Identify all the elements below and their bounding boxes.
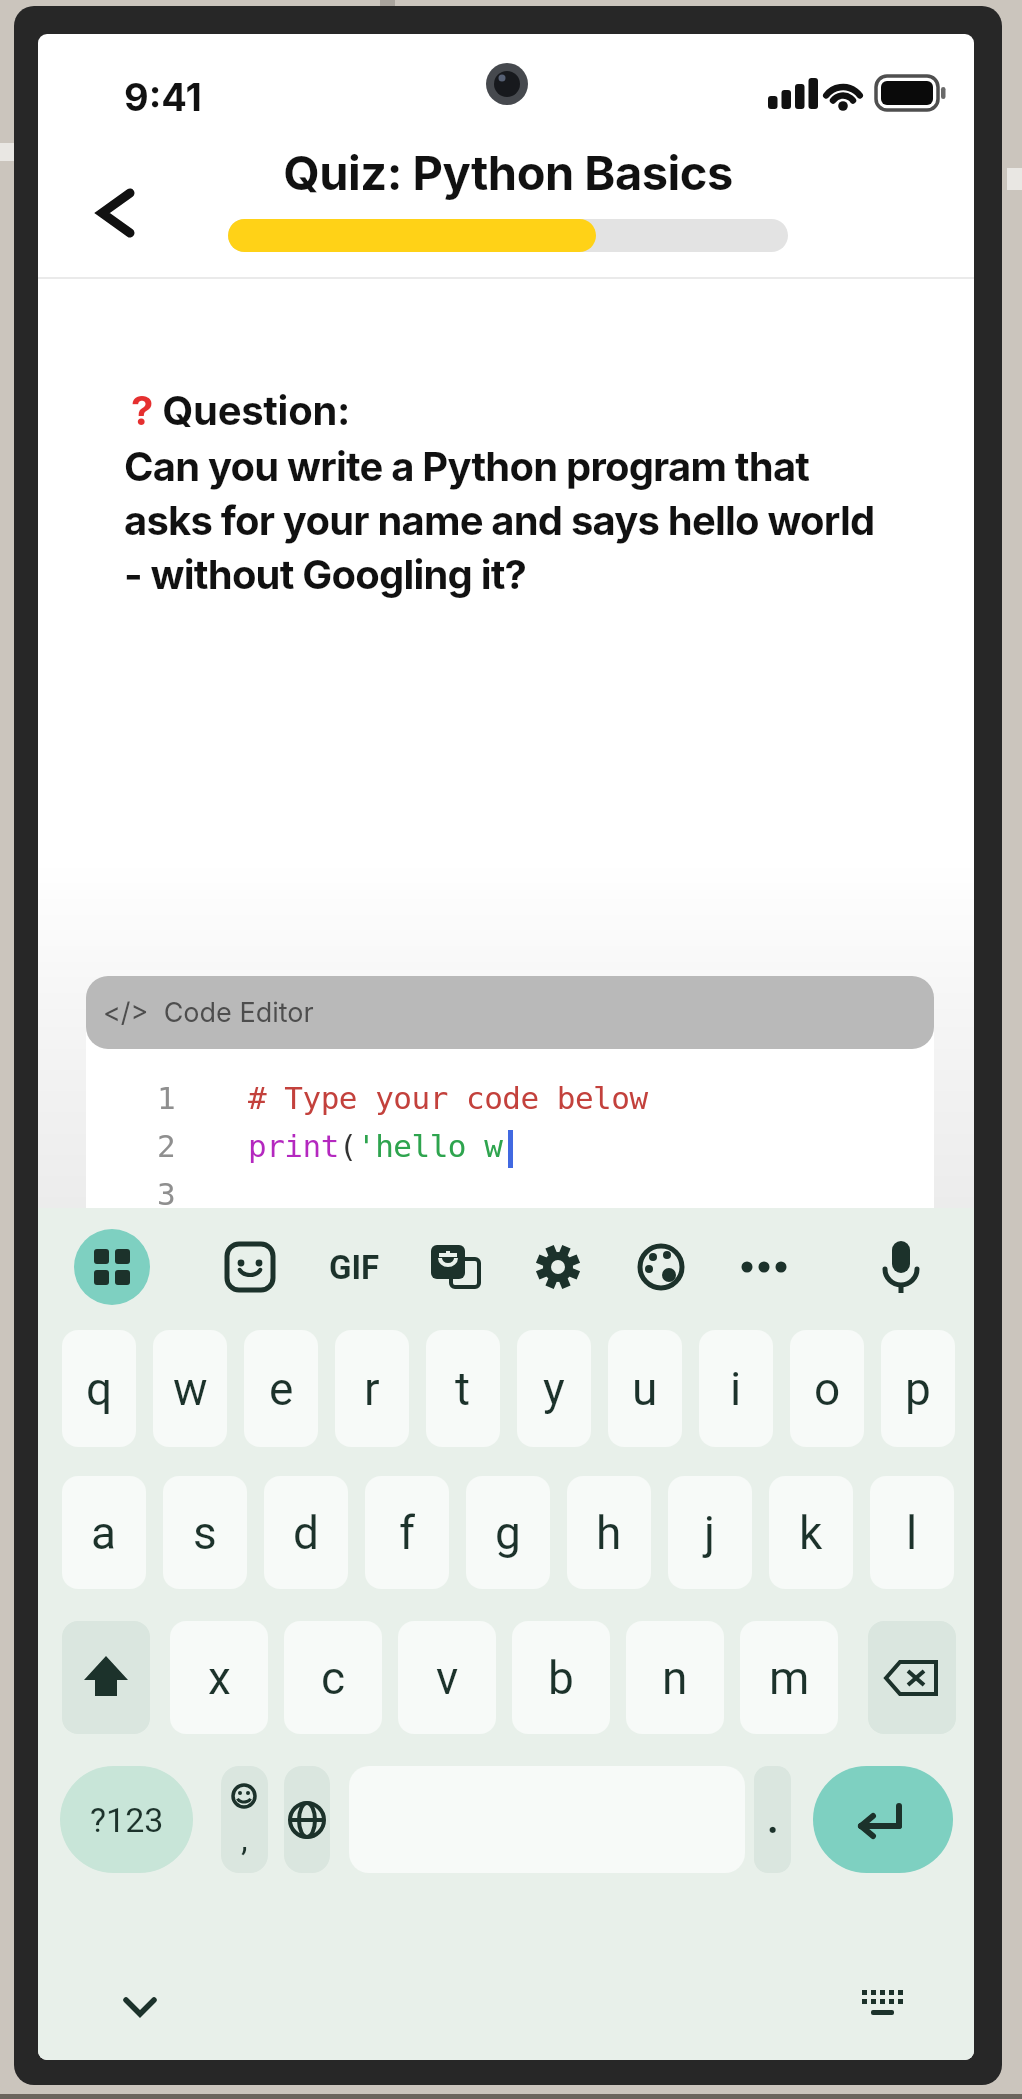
- button[interactable]: f: [365, 1476, 449, 1589]
- button[interactable]: q: [62, 1330, 136, 1447]
- staticText: t: [455, 1362, 471, 1416]
- button[interactable]: [728, 1241, 800, 1293]
- button[interactable]: p: [881, 1330, 955, 1447]
- staticText: 1: [157, 1080, 176, 1116]
- button[interactable]: m: [740, 1621, 838, 1734]
- button[interactable]: s: [163, 1476, 247, 1589]
- button[interactable]: d: [264, 1476, 348, 1589]
- button[interactable]: r: [335, 1330, 409, 1447]
- button[interactable]: [86, 976, 934, 1210]
- button[interactable]: [429, 1241, 481, 1293]
- button[interactable]: g: [466, 1476, 550, 1589]
- button[interactable]: b: [512, 1621, 610, 1734]
- staticText: b: [548, 1651, 574, 1705]
- staticText: n: [662, 1651, 688, 1705]
- button[interactable]: [74, 1229, 150, 1305]
- staticText: ,: [241, 1819, 248, 1859]
- staticText: l: [906, 1506, 918, 1560]
- button[interactable]: x: [170, 1621, 268, 1734]
- staticText: w: [173, 1362, 208, 1416]
- button[interactable]: [635, 1241, 687, 1293]
- button[interactable]: h: [567, 1476, 651, 1589]
- button[interactable]: n: [626, 1621, 724, 1734]
- button[interactable]: o: [790, 1330, 864, 1447]
- button[interactable]: j: [668, 1476, 752, 1589]
- staticText: j: [704, 1506, 716, 1560]
- staticText: f: [399, 1506, 415, 1560]
- button[interactable]: [284, 1766, 330, 1873]
- staticText: 3: [157, 1176, 176, 1212]
- button[interactable]: GIF: [314, 1241, 394, 1293]
- button[interactable]: [224, 1241, 276, 1293]
- button[interactable]: [875, 1237, 927, 1297]
- staticText: v: [436, 1651, 459, 1705]
- staticText: Quiz: Python Basics: [283, 144, 733, 201]
- staticText: g: [495, 1506, 521, 1560]
- button[interactable]: k: [769, 1476, 853, 1589]
- staticText: 9:41: [124, 74, 203, 120]
- button[interactable]: v: [398, 1621, 496, 1734]
- staticText: x: [208, 1651, 231, 1705]
- button[interactable]: [532, 1241, 584, 1293]
- button[interactable]: i: [699, 1330, 773, 1447]
- staticText: c: [321, 1651, 346, 1705]
- staticText: k: [799, 1506, 823, 1560]
- button[interactable]: [108, 1974, 172, 2038]
- button[interactable]: w: [153, 1330, 227, 1447]
- button[interactable]: c: [284, 1621, 382, 1734]
- button[interactable]: ?123: [60, 1766, 193, 1873]
- staticText: o: [814, 1362, 841, 1416]
- staticText: q: [86, 1362, 113, 1416]
- button[interactable]: [813, 1766, 953, 1873]
- staticText: e: [269, 1362, 294, 1416]
- button[interactable]: .: [754, 1766, 791, 1873]
- button[interactable]: t: [426, 1330, 500, 1447]
- staticText: 2: [157, 1128, 176, 1164]
- staticText: r: [364, 1362, 380, 1416]
- staticText: s: [193, 1506, 217, 1560]
- button[interactable]: u: [608, 1330, 682, 1447]
- staticText: GIF: [329, 1248, 380, 1287]
- button[interactable]: e: [244, 1330, 318, 1447]
- staticText: .: [767, 1796, 779, 1843]
- staticText: i: [730, 1362, 742, 1416]
- button[interactable]: [78, 174, 158, 254]
- staticText: # Type your code below: [248, 1080, 648, 1116]
- staticText: y: [543, 1362, 565, 1416]
- staticText: d: [293, 1506, 319, 1560]
- button[interactable]: ,: [221, 1766, 268, 1873]
- button[interactable]: [850, 1972, 918, 2036]
- staticText: m: [769, 1651, 810, 1705]
- button[interactable]: y: [517, 1330, 591, 1447]
- button[interactable]: [868, 1621, 956, 1734]
- staticText: ?123: [90, 1800, 164, 1840]
- staticText: h: [596, 1506, 622, 1560]
- staticText: Can you write a Python program that asks…: [124, 442, 875, 599]
- button[interactable]: a: [62, 1476, 146, 1589]
- staticText: p: [905, 1362, 931, 1416]
- staticText: </> Code Editor: [103, 996, 314, 1029]
- staticText: print('hello w: [248, 1128, 503, 1164]
- staticText: a: [91, 1506, 117, 1560]
- button[interactable]: [62, 1621, 150, 1734]
- button[interactable]: l: [870, 1476, 954, 1589]
- staticText: u: [632, 1362, 658, 1416]
- staticText: ? Question:: [131, 386, 351, 434]
